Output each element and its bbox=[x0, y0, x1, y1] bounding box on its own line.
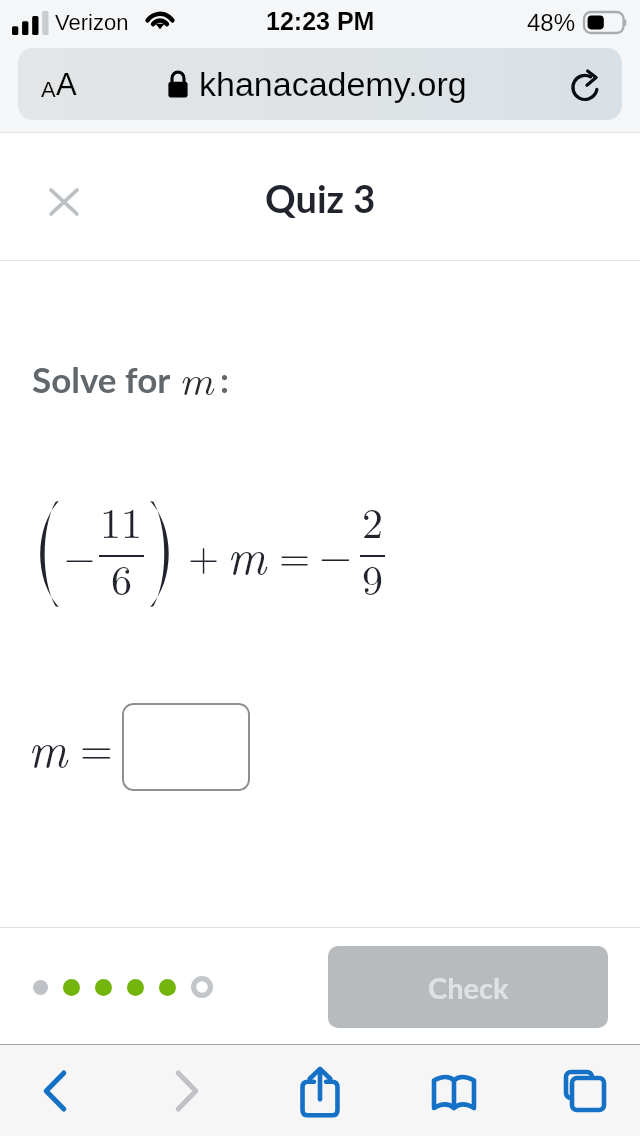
staticText: A bbox=[56, 67, 77, 102]
button[interactable]: Share bbox=[290, 1061, 350, 1121]
staticText: Solve for bbox=[32, 358, 171, 400]
staticText: m bbox=[227, 520, 267, 588]
button[interactable]: Back bbox=[27, 1063, 83, 1119]
staticText: − bbox=[319, 524, 352, 584]
button[interactable]: Tabs bbox=[557, 1063, 613, 1119]
staticText: : bbox=[220, 358, 230, 400]
staticText: Check bbox=[428, 970, 509, 1005]
staticText: Verizon bbox=[55, 10, 129, 35]
staticText: 6 bbox=[111, 548, 133, 608]
staticText: m bbox=[28, 713, 68, 781]
staticText: + bbox=[188, 526, 220, 583]
button[interactable]: Page settings bbox=[18, 48, 622, 120]
button[interactable]: Close bbox=[39, 177, 89, 227]
button[interactable]: Forward bbox=[159, 1063, 215, 1119]
staticText: Quiz 3 bbox=[265, 175, 376, 221]
staticText: khanacademy.org bbox=[199, 65, 467, 103]
staticText: 9 bbox=[362, 548, 384, 608]
button[interactable]: Reload bbox=[564, 62, 608, 106]
staticText: = bbox=[279, 526, 311, 583]
staticText: A bbox=[41, 77, 56, 102]
staticText: 11 bbox=[100, 491, 143, 551]
staticText: 12:23 PM bbox=[266, 7, 375, 35]
button[interactable]: Page settings bbox=[41, 67, 77, 102]
staticText: 2 bbox=[362, 491, 384, 551]
staticText: − bbox=[64, 526, 96, 583]
staticText: m bbox=[179, 348, 214, 407]
staticText: = bbox=[80, 717, 113, 777]
button[interactable]: Answer input bbox=[122, 703, 250, 791]
staticText: 48% bbox=[527, 9, 576, 36]
button[interactable]: Check bbox=[328, 946, 608, 1028]
button[interactable]: Bookmarks bbox=[426, 1063, 482, 1119]
